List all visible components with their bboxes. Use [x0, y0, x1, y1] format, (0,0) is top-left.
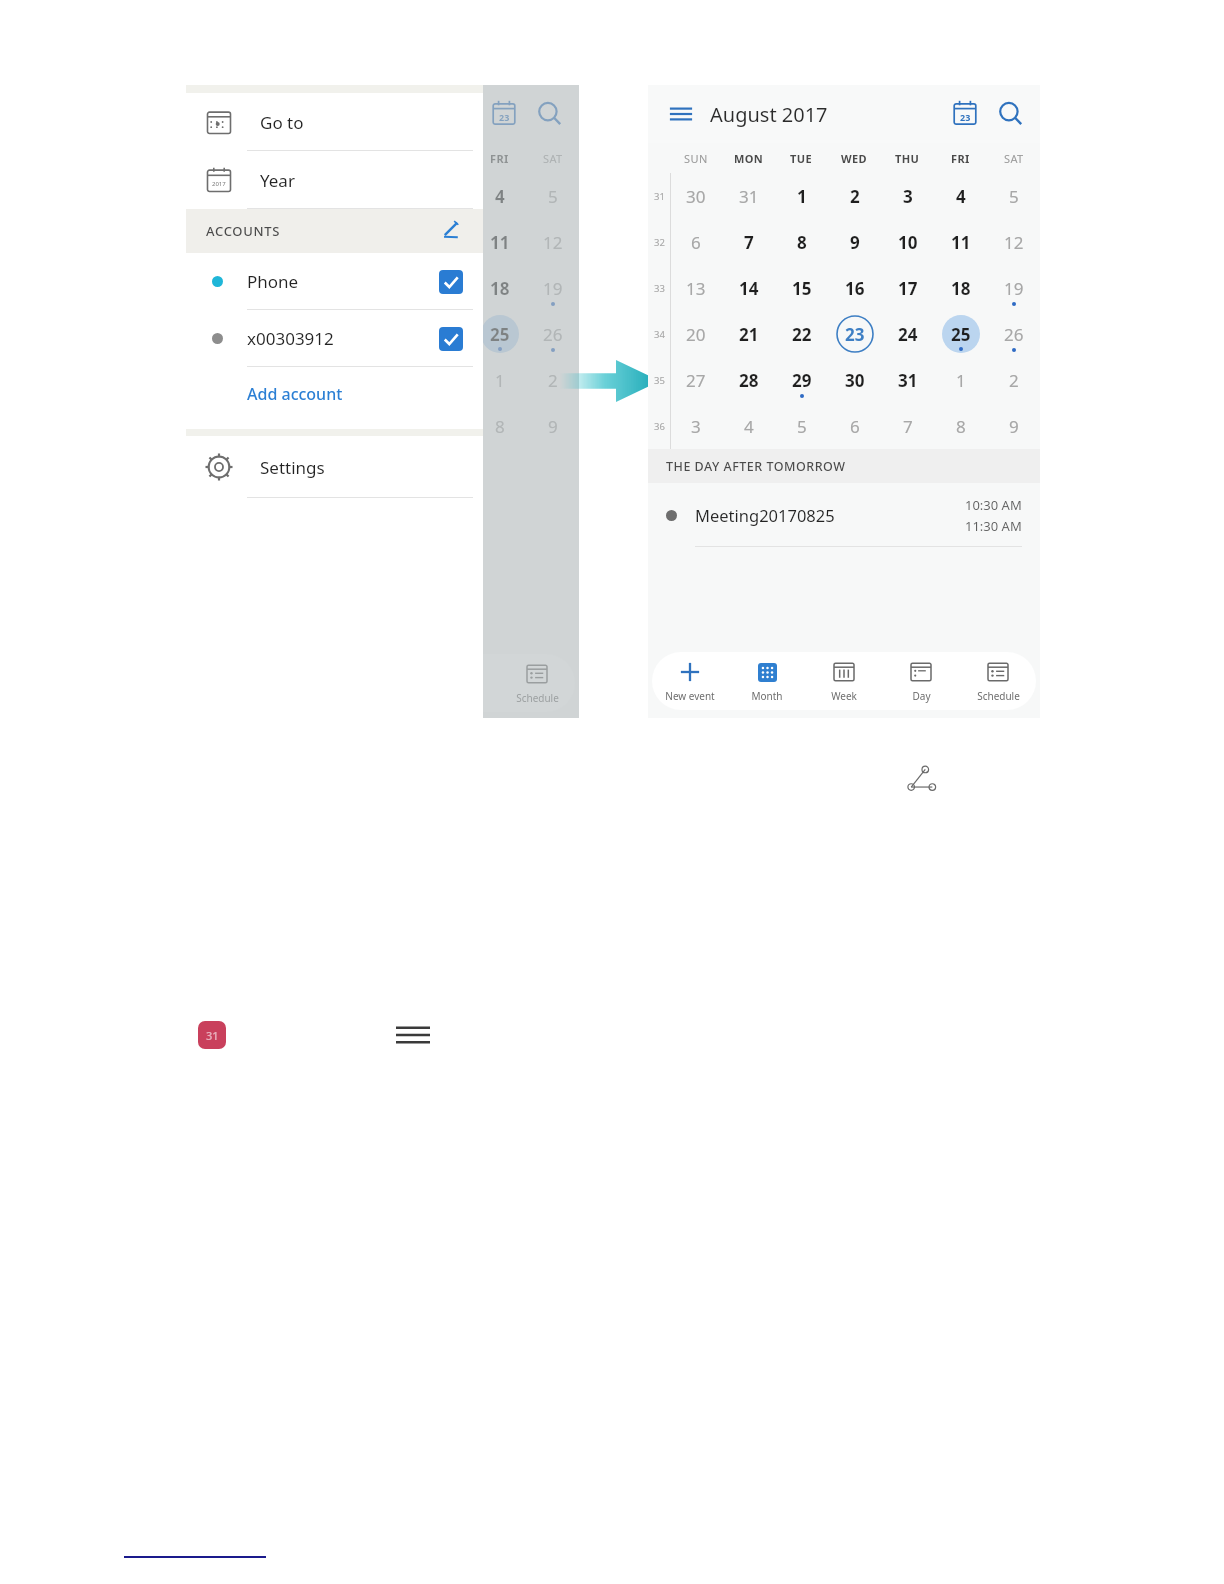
button[interactable]: 11 [473, 219, 526, 265]
button[interactable]: 2 [367, 173, 420, 219]
button[interactable]: 8 [775, 219, 828, 265]
button[interactable]: 4 [722, 403, 775, 449]
button[interactable]: 24 [420, 311, 473, 357]
button[interactable]: 4 [261, 403, 314, 449]
button[interactable]: 15 [314, 265, 367, 311]
button[interactable]: 3 [670, 403, 722, 449]
button[interactable]: 31 [881, 357, 934, 403]
button[interactable]: 4 [934, 173, 987, 219]
button[interactable]: Today [950, 99, 980, 129]
button[interactable]: 9 [367, 219, 420, 265]
button[interactable]: x00303912 [186, 310, 483, 367]
button[interactable]: Day [886, 656, 956, 707]
button[interactable]: 17 [420, 265, 473, 311]
button[interactable]: 6 [828, 403, 881, 449]
button[interactable]: 25 [473, 311, 526, 357]
button[interactable]: 26 [987, 311, 1040, 357]
button[interactable]: 31 [722, 173, 775, 219]
button[interactable]: 30 [208, 173, 261, 219]
button[interactable]: 7 [722, 219, 775, 265]
button[interactable]: 21 [261, 311, 314, 357]
button[interactable]: 1 [314, 173, 367, 219]
button[interactable]: Week [809, 656, 879, 707]
button[interactable]: 6 [208, 219, 261, 265]
button[interactable]: 13 [670, 265, 722, 311]
button[interactable]: 2 [526, 357, 579, 403]
button[interactable]: 30 [670, 173, 722, 219]
button[interactable]: Add account [186, 367, 483, 421]
button[interactable]: 29 [314, 357, 367, 403]
button[interactable]: 9 [526, 403, 579, 449]
button[interactable]: Schedule [502, 658, 572, 709]
button[interactable]: 2017 [186, 151, 483, 209]
button[interactable]: 12 [987, 219, 1040, 265]
button[interactable]: 2 [987, 357, 1040, 403]
button[interactable]: 16 [828, 265, 881, 311]
button[interactable]: 6 [670, 219, 722, 265]
button[interactable]: Settings [186, 436, 483, 498]
button[interactable]: 5 [526, 173, 579, 219]
button[interactable]: 31 [261, 173, 314, 219]
button[interactable]: 8 [314, 219, 367, 265]
button[interactable]: 20 [208, 311, 261, 357]
button[interactable]: 1 [775, 173, 828, 219]
button[interactable]: 22 [314, 311, 367, 357]
button[interactable]: 30 [828, 357, 881, 403]
button[interactable]: Search [996, 99, 1026, 129]
button[interactable]: 9 [828, 219, 881, 265]
button[interactable]: 19 [987, 265, 1040, 311]
button[interactable]: 23 [828, 311, 881, 357]
button[interactable]: 3 [208, 403, 261, 449]
button[interactable]: 27 [670, 357, 722, 403]
button[interactable]: 18 [473, 265, 526, 311]
button[interactable]: Go to [186, 93, 483, 151]
button[interactable]: 17 [881, 265, 934, 311]
button[interactable]: 20 [670, 311, 722, 357]
button[interactable]: 9 [987, 403, 1040, 449]
button[interactable]: 12 [526, 219, 579, 265]
button[interactable]: Day [425, 658, 495, 709]
button[interactable]: 5 [314, 403, 367, 449]
button[interactable]: 28 [722, 357, 775, 403]
button[interactable]: 27 [208, 357, 261, 403]
button[interactable]: 10 [881, 219, 934, 265]
button[interactable]: 4 [473, 173, 526, 219]
button[interactable]: Schedule [963, 656, 1033, 707]
button[interactable]: 31 [420, 357, 473, 403]
button[interactable]: Month [732, 656, 802, 707]
button[interactable]: 1 [473, 357, 526, 403]
button[interactable]: 13 [208, 265, 261, 311]
button[interactable]: 2 [828, 173, 881, 219]
button[interactable]: 24 [881, 311, 934, 357]
button[interactable]: Menu [396, 1022, 430, 1048]
button[interactable]: Calendar app [198, 1021, 226, 1049]
button[interactable]: 10 [420, 219, 473, 265]
button[interactable]: 28 [261, 357, 314, 403]
button[interactable]: 3 [420, 173, 473, 219]
button[interactable]: 14 [722, 265, 775, 311]
button[interactable]: 11 [934, 219, 987, 265]
button[interactable]: 6 [367, 403, 420, 449]
button[interactable]: 21 [722, 311, 775, 357]
button[interactable]: Meeting20170825 [648, 483, 1040, 547]
button[interactable]: 16 [367, 265, 420, 311]
button[interactable]: 18 [934, 265, 987, 311]
button[interactable]: Open navigation drawer [666, 99, 696, 129]
button[interactable]: 25 [934, 311, 987, 357]
button[interactable]: New event [655, 656, 725, 707]
button[interactable]: 14 [261, 265, 314, 311]
button[interactable]: 3 [881, 173, 934, 219]
button[interactable]: 19 [526, 265, 579, 311]
button[interactable]: 1 [934, 357, 987, 403]
button[interactable]: 8 [473, 403, 526, 449]
button[interactable]: Share [898, 758, 942, 802]
button[interactable]: 5 [987, 173, 1040, 219]
button[interactable]: 8 [934, 403, 987, 449]
button[interactable]: 5 [775, 403, 828, 449]
button[interactable]: 7 [261, 219, 314, 265]
button[interactable]: Edit accounts [437, 218, 463, 244]
